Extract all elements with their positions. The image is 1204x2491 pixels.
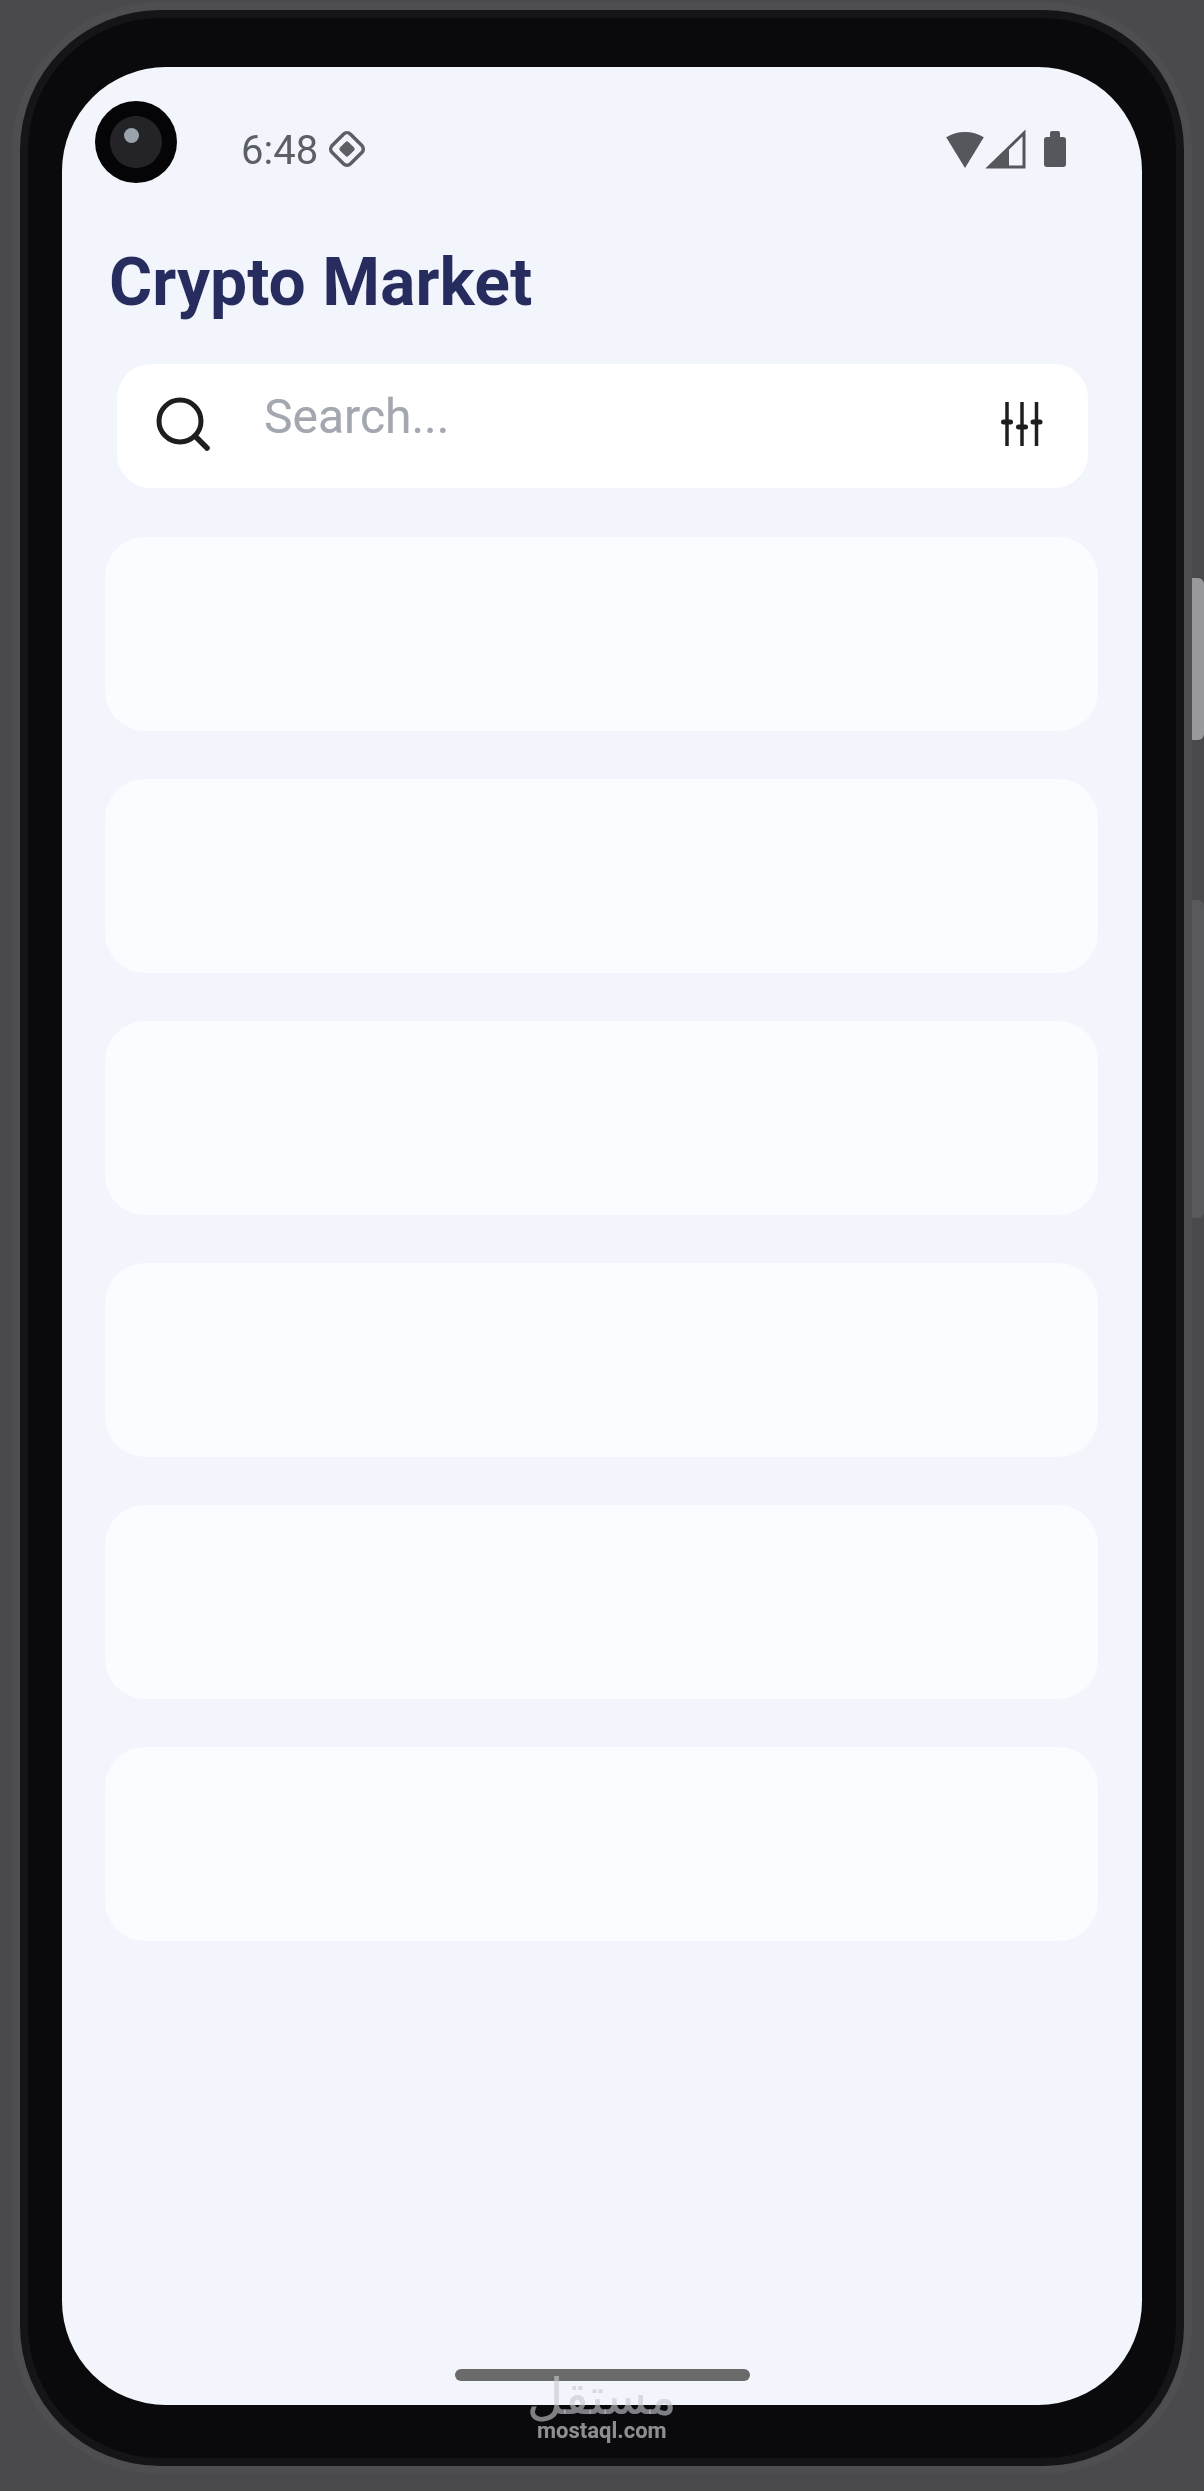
staticText: mostaql.com xyxy=(537,2418,667,2444)
staticText: Search... xyxy=(264,388,450,444)
staticText: 6:48 xyxy=(241,127,319,174)
staticText: Crypto Market xyxy=(109,244,533,321)
button[interactable]: Search... xyxy=(117,364,1088,488)
button[interactable] xyxy=(998,399,1046,447)
staticText: مستقل xyxy=(527,2368,677,2426)
